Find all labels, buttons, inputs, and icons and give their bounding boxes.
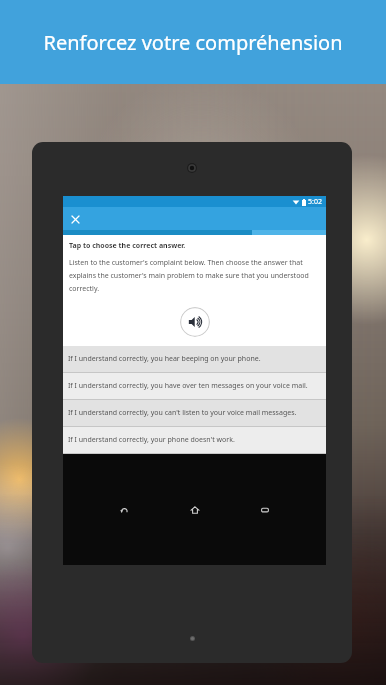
staticText: If I understand correctly, you have over… [68, 381, 308, 391]
staticText: 5:02 [308, 197, 322, 207]
button[interactable]: If I understand correctly, you can't lis… [63, 400, 326, 426]
button[interactable]: Play audio [180, 307, 210, 337]
staticText: Renforcez votre compréhension [43, 29, 343, 56]
staticText: Tap to choose the correct answer. [69, 241, 186, 251]
button[interactable]: If I understand correctly, you hear beep… [63, 346, 326, 372]
button[interactable]: If I understand correctly, you have over… [63, 373, 326, 399]
button[interactable]: If I understand correctly, your phone do… [63, 427, 326, 453]
staticText: If I understand correctly, your phone do… [68, 435, 235, 445]
staticText: If I understand correctly, you hear beep… [68, 354, 261, 364]
staticText: If I understand correctly, you can't lis… [68, 408, 297, 418]
button[interactable]: Recent apps [256, 501, 274, 519]
button[interactable]: Back [115, 501, 133, 519]
staticText: Listen to the customer's complaint below… [69, 258, 320, 293]
button[interactable]: Close [67, 211, 83, 227]
button[interactable]: Home [186, 501, 204, 519]
